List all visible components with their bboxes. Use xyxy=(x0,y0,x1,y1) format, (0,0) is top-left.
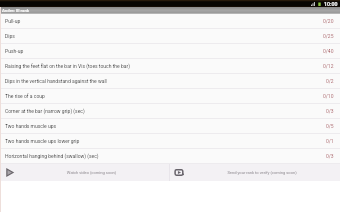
other: Send video to verify xyxy=(174,167,185,178)
staticText: 0/20 xyxy=(323,18,334,24)
button[interactable]: Two hands muscle ups xyxy=(0,119,340,133)
button[interactable]: Pull-up xyxy=(0,14,340,28)
button[interactable]: Corner at the bar (narrow grip) (sec) xyxy=(0,104,340,118)
button[interactable]: Send video to verify xyxy=(170,164,340,181)
staticText: 0/5 xyxy=(326,123,334,129)
button[interactable]: Horizontal hanging behind (swallow) (sec… xyxy=(0,149,340,163)
staticText: Push-up xyxy=(5,48,323,54)
button[interactable]: The rise of a coup xyxy=(0,89,340,103)
button[interactable]: Raising the feet flat on the bar in Vis … xyxy=(0,59,340,73)
staticText: Horizontal hanging behind (swallow) (sec… xyxy=(5,153,326,159)
staticText: Two hands muscle ups lower grip xyxy=(5,138,326,144)
staticText: 0/40 xyxy=(323,48,334,54)
button[interactable]: Dips xyxy=(0,29,340,43)
staticText: 0/25 xyxy=(323,33,334,39)
staticText: Dips xyxy=(5,33,323,39)
button[interactable]: Dips in the vertical handstand against t… xyxy=(0,74,340,88)
staticText: 0/10 xyxy=(323,93,334,99)
staticText: 0/3 xyxy=(326,153,334,159)
staticText: Send your rank to verify (coming soon) xyxy=(185,170,339,175)
button[interactable]: Watch video (coming soon) xyxy=(0,164,169,181)
staticText: 0/3 xyxy=(326,108,334,114)
staticText: Pull-up xyxy=(5,18,323,24)
staticText: Andre: III rank xyxy=(2,8,30,13)
staticText: 0/2 xyxy=(326,78,334,84)
staticText: Raising the feet flat on the bar in Vis … xyxy=(5,63,323,69)
staticText: 10:00 xyxy=(324,1,338,7)
staticText: The rise of a coup xyxy=(5,93,323,99)
staticText: Dips in the vertical handstand against t… xyxy=(5,78,326,84)
staticText: Two hands muscle ups xyxy=(5,123,326,129)
button[interactable]: Push-up xyxy=(0,44,340,58)
staticText: Corner at the bar (narrow grip) (sec) xyxy=(5,108,326,114)
staticText: Watch video (coming soon) xyxy=(15,170,168,175)
button[interactable]: Two hands muscle ups lower grip xyxy=(0,134,340,148)
staticText: 0/12 xyxy=(323,63,334,69)
staticText: 0/1 xyxy=(326,138,334,144)
